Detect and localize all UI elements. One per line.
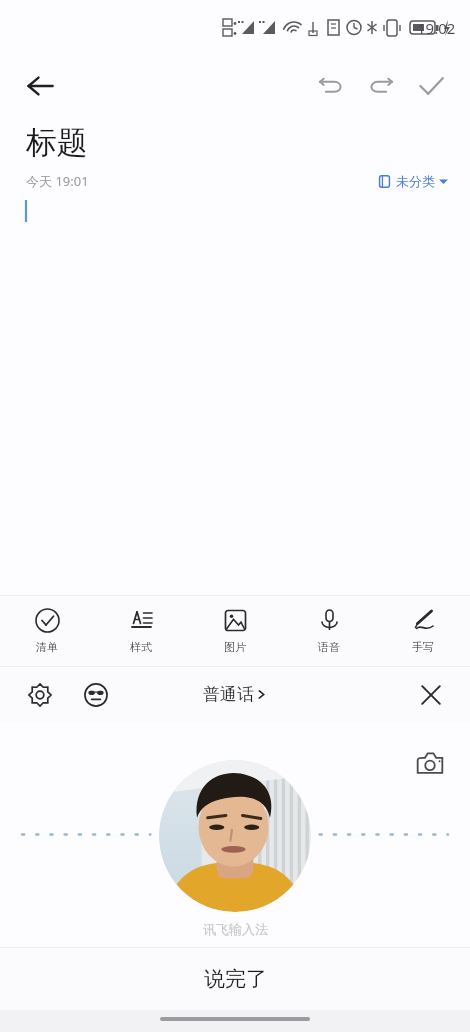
- staticText: 清单: [36, 640, 58, 654]
- button[interactable]: 未分类: [374, 170, 452, 192]
- staticText: 标题: [26, 123, 88, 162]
- staticText: 手写: [412, 640, 434, 654]
- button[interactable]: 清单: [0, 596, 94, 666]
- staticText: 语音: [318, 640, 340, 654]
- staticText: 讯飞输入法: [203, 921, 268, 937]
- button[interactable]: Back: [14, 60, 66, 112]
- staticText: 普通话: [203, 684, 254, 705]
- button[interactable]: 图片: [188, 596, 282, 666]
- staticText: 样式: [130, 640, 152, 654]
- button[interactable]: 普通话: [195, 680, 275, 709]
- staticText: 19.02: [417, 18, 456, 38]
- staticText: 图片: [224, 640, 246, 654]
- button[interactable]: Camera: [406, 740, 454, 788]
- button[interactable]: Redo: [356, 61, 406, 111]
- button[interactable]: Emoji: [74, 673, 118, 717]
- button[interactable]: Camera preview: [159, 760, 311, 912]
- button[interactable]: 说完了: [0, 948, 470, 1010]
- staticText: 未分类: [396, 173, 435, 189]
- staticText: 说完了: [204, 966, 267, 992]
- button[interactable]: 手写: [376, 596, 470, 666]
- button[interactable]: 语音: [282, 596, 376, 666]
- button[interactable]: Undo: [306, 61, 356, 111]
- staticText: 今天 19:01: [26, 172, 89, 190]
- button[interactable]: 样式: [94, 596, 188, 666]
- button[interactable]: Close: [408, 672, 454, 718]
- button[interactable]: Settings: [18, 673, 62, 717]
- button[interactable]: Done: [406, 61, 456, 111]
